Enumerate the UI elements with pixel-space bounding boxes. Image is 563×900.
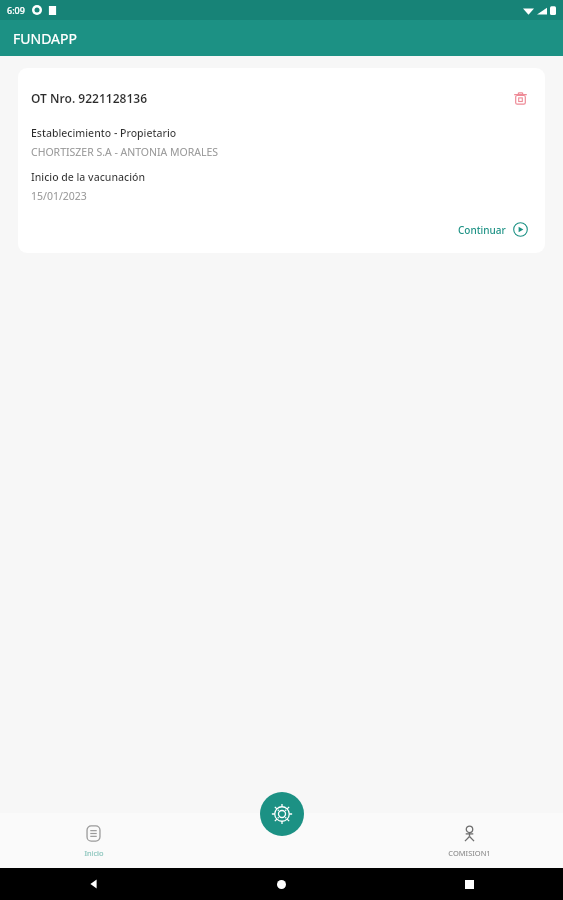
button[interactable]: Atrás: [0, 868, 187, 900]
staticText: COMISION1: [448, 848, 491, 858]
staticText: FUNDAPP: [13, 29, 77, 48]
staticText: 15/01/2023: [31, 189, 87, 203]
button[interactable]: COMISION1: [375, 813, 563, 868]
staticText: Inicio de la vacunación: [31, 170, 145, 184]
staticText: Establecimiento - Propietario: [31, 126, 177, 140]
button[interactable]: Recientes: [375, 868, 563, 900]
button[interactable]: Inicio: [187, 868, 375, 900]
button[interactable]: Continuar: [454, 219, 532, 240]
staticText: OT Nro. 9221128136: [31, 90, 508, 106]
staticText: CHORTISZER S.A - ANTONIA MORALES: [31, 145, 219, 159]
button[interactable]: Inicio: [0, 813, 187, 868]
staticText: Continuar: [458, 223, 506, 237]
staticText: 6:09: [7, 4, 25, 16]
button[interactable]: Eliminar: [508, 86, 532, 110]
button[interactable]: OT Nro. 9221128136: [18, 68, 545, 253]
staticText: Inicio: [84, 848, 104, 858]
button[interactable]: Escanear: [260, 792, 304, 836]
